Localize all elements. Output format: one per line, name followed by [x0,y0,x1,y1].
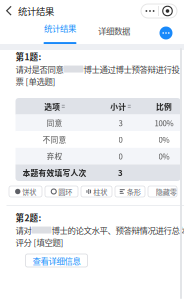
button[interactable]: 条形 [115,186,145,197]
staticText: 圆环 [58,186,72,197]
button[interactable]: 柱状 [81,186,112,197]
staticText: 0 [118,134,122,145]
button[interactable]: 圆环 [45,186,78,197]
staticText: 请对 [15,224,31,236]
staticText: 本题有效填写人次 [22,167,86,178]
staticText: 小计 [110,101,126,112]
staticText: 选项 [44,101,60,112]
staticText: 0 [118,150,122,162]
staticText: 详细数据 [98,24,130,37]
staticText: 第1题: [15,50,41,63]
staticText: 请对是否同意 [15,63,63,75]
button[interactable]: 详细数据 [93,22,135,44]
staticText: 弃权 [46,150,62,162]
staticText: 条形 [127,186,141,197]
staticText: 查看详细信息 [32,254,80,267]
staticText: 100% [154,117,173,128]
staticText: 统计结果 [18,4,54,18]
button[interactable]: 统计结果 [39,22,81,44]
staticText: 博士的论文水平、预答辩情况进行总体 [51,224,184,236]
staticText: 统计结果 [44,22,76,34]
staticText: 0% [158,150,169,162]
staticText: 3 [118,167,123,178]
staticText: 柱状 [93,186,107,197]
button[interactable]: 隐藏零 [148,186,177,197]
button[interactable]: More [156,22,176,44]
staticText: 0% [158,134,169,145]
staticText: 不同意 [42,134,66,145]
button[interactable]: 饼状 [9,186,42,197]
staticText: 比例 [156,101,172,112]
staticText: 票 [单选题] [15,75,55,87]
staticText: 3 [118,117,122,128]
button[interactable]: Back [0,0,18,22]
staticText: 博士通过博士预答辩进行投 [83,63,179,75]
staticText: 饼状 [22,186,36,197]
staticText: 同意 [46,117,62,128]
staticText: 隐藏零 [156,186,177,197]
button[interactable]: 查看详细信息 [25,254,87,267]
staticText: 评分 [填空题] [15,236,63,248]
button[interactable]: More options [141,4,177,18]
staticText: 第2题: [15,211,41,224]
